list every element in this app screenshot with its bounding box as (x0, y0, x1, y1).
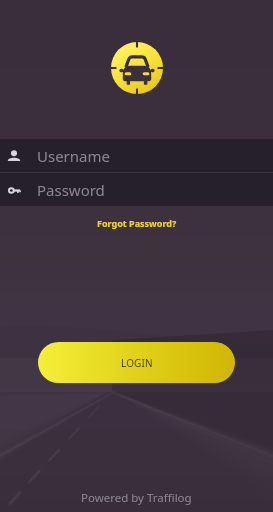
staticText: Forgot Password? (97, 217, 177, 229)
staticText: Password (37, 180, 105, 200)
staticText: Powered by Traffilog (81, 490, 192, 506)
button[interactable]: Username (0, 139, 273, 172)
button[interactable]: LOGIN (38, 342, 235, 383)
staticText: LOGIN (121, 356, 153, 370)
button[interactable]: Forgot Password? (91, 214, 183, 232)
staticText: Username (37, 146, 110, 166)
button[interactable]: Password (0, 173, 273, 206)
